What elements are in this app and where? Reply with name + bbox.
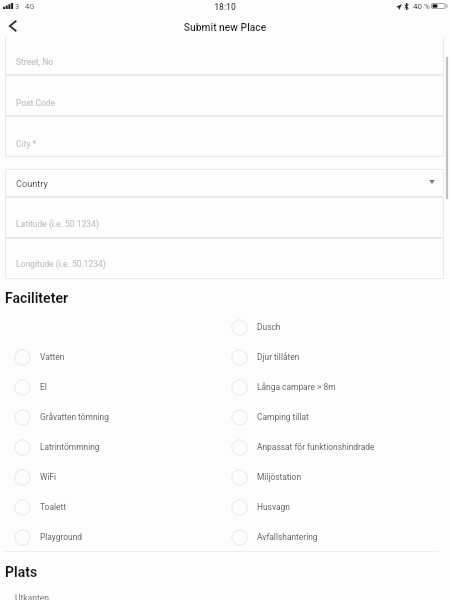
button[interactable]: WiFi <box>14 465 57 489</box>
button[interactable]: Gråvatten tömning <box>14 405 109 429</box>
staticText: 3 <box>15 2 20 11</box>
button[interactable]: Latrintömmning <box>14 435 100 459</box>
staticText: Submit new Place <box>0 21 450 33</box>
staticText: Djur tillåten <box>257 352 300 362</box>
button[interactable]: Playground <box>14 525 83 549</box>
staticText: Faciliteter <box>5 290 69 306</box>
button[interactable]: Husvagn <box>231 495 290 519</box>
staticText: Camping tillat <box>257 412 309 422</box>
staticText: City * <box>16 139 37 149</box>
button[interactable]: Djur tillåten <box>231 345 300 369</box>
button[interactable]: Country <box>5 169 444 197</box>
staticText: Dusch <box>257 322 281 332</box>
button[interactable]: Avfallshantering <box>231 525 318 549</box>
button[interactable]: Camping tillat <box>231 405 309 429</box>
button[interactable]: Street, No <box>5 37 444 75</box>
staticText: Toalett <box>40 502 66 512</box>
staticText: Anpassat för funktionshindrade <box>257 442 375 452</box>
staticText: Plats <box>5 564 38 580</box>
button[interactable]: Vatten <box>14 345 65 369</box>
staticText: Gråvatten tömning <box>40 412 109 422</box>
button[interactable]: Longitude (i.e. 50.1234) <box>5 238 444 279</box>
button[interactable]: Långa campare > 8m <box>231 375 336 399</box>
button[interactable]: City * <box>5 116 444 157</box>
button[interactable]: Toalett <box>14 495 66 519</box>
staticText: Latitude (i.e. 50.1234) <box>16 219 99 229</box>
button[interactable]: Miljöstation <box>231 465 302 489</box>
staticText: Latrintömmning <box>40 442 100 452</box>
staticText: Street, No <box>16 57 54 67</box>
staticText: Post Code <box>16 98 56 108</box>
staticText: 4G <box>25 2 35 11</box>
staticText: El <box>40 382 47 392</box>
button[interactable]: Post Code <box>5 75 444 116</box>
staticText: Avfallshantering <box>257 532 318 542</box>
staticText: Långa campare > 8m <box>257 382 336 392</box>
button[interactable]: Back <box>1 14 25 38</box>
button[interactable]: Anpassat för funktionshindrade <box>231 435 375 459</box>
staticText: Vatten <box>40 352 65 362</box>
staticText: Country <box>16 178 48 189</box>
staticText: Husvagn <box>257 502 290 512</box>
staticText: Miljöstation <box>257 472 302 482</box>
button[interactable]: Dusch <box>231 315 281 339</box>
button[interactable]: El <box>14 375 47 399</box>
staticText: Utkanten <box>15 593 49 600</box>
button[interactable]: Latitude (i.e. 50.1234) <box>5 197 444 238</box>
staticText: 40 % <box>413 2 430 11</box>
staticText: Playground <box>40 532 83 542</box>
staticText: 18:10 <box>0 2 450 12</box>
staticText: WiFi <box>40 472 57 482</box>
staticText: Longitude (i.e. 50.1234) <box>16 259 106 269</box>
